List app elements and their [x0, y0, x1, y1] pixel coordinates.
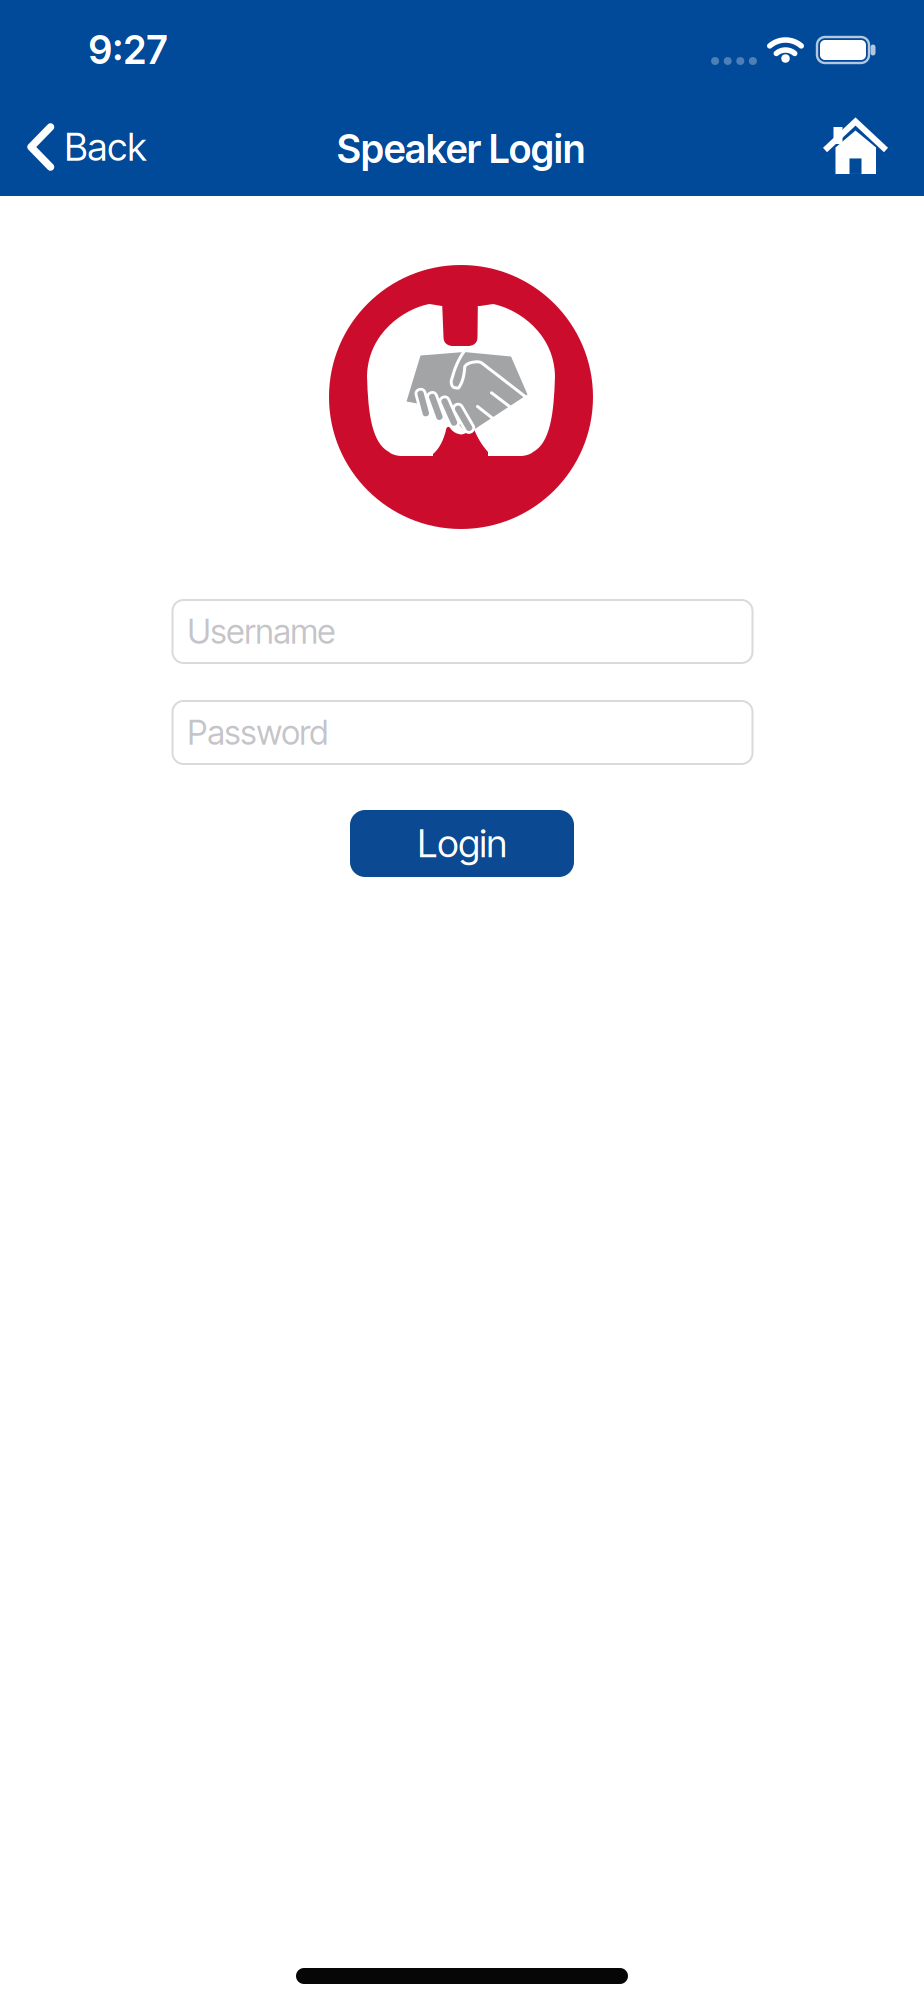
button[interactable]: Username: [172, 600, 752, 663]
button[interactable]: Back: [27, 123, 146, 170]
staticText: 9:27: [88, 27, 167, 73]
staticText: Password: [187, 712, 328, 753]
staticText: Back: [64, 124, 146, 170]
staticText: Login: [417, 820, 506, 866]
staticText: Speaker Login: [337, 126, 585, 172]
button[interactable]: Login: [350, 810, 574, 877]
button[interactable]: Password: [172, 701, 752, 764]
button[interactable]: Home: [823, 118, 887, 176]
staticText: Username: [187, 611, 335, 652]
